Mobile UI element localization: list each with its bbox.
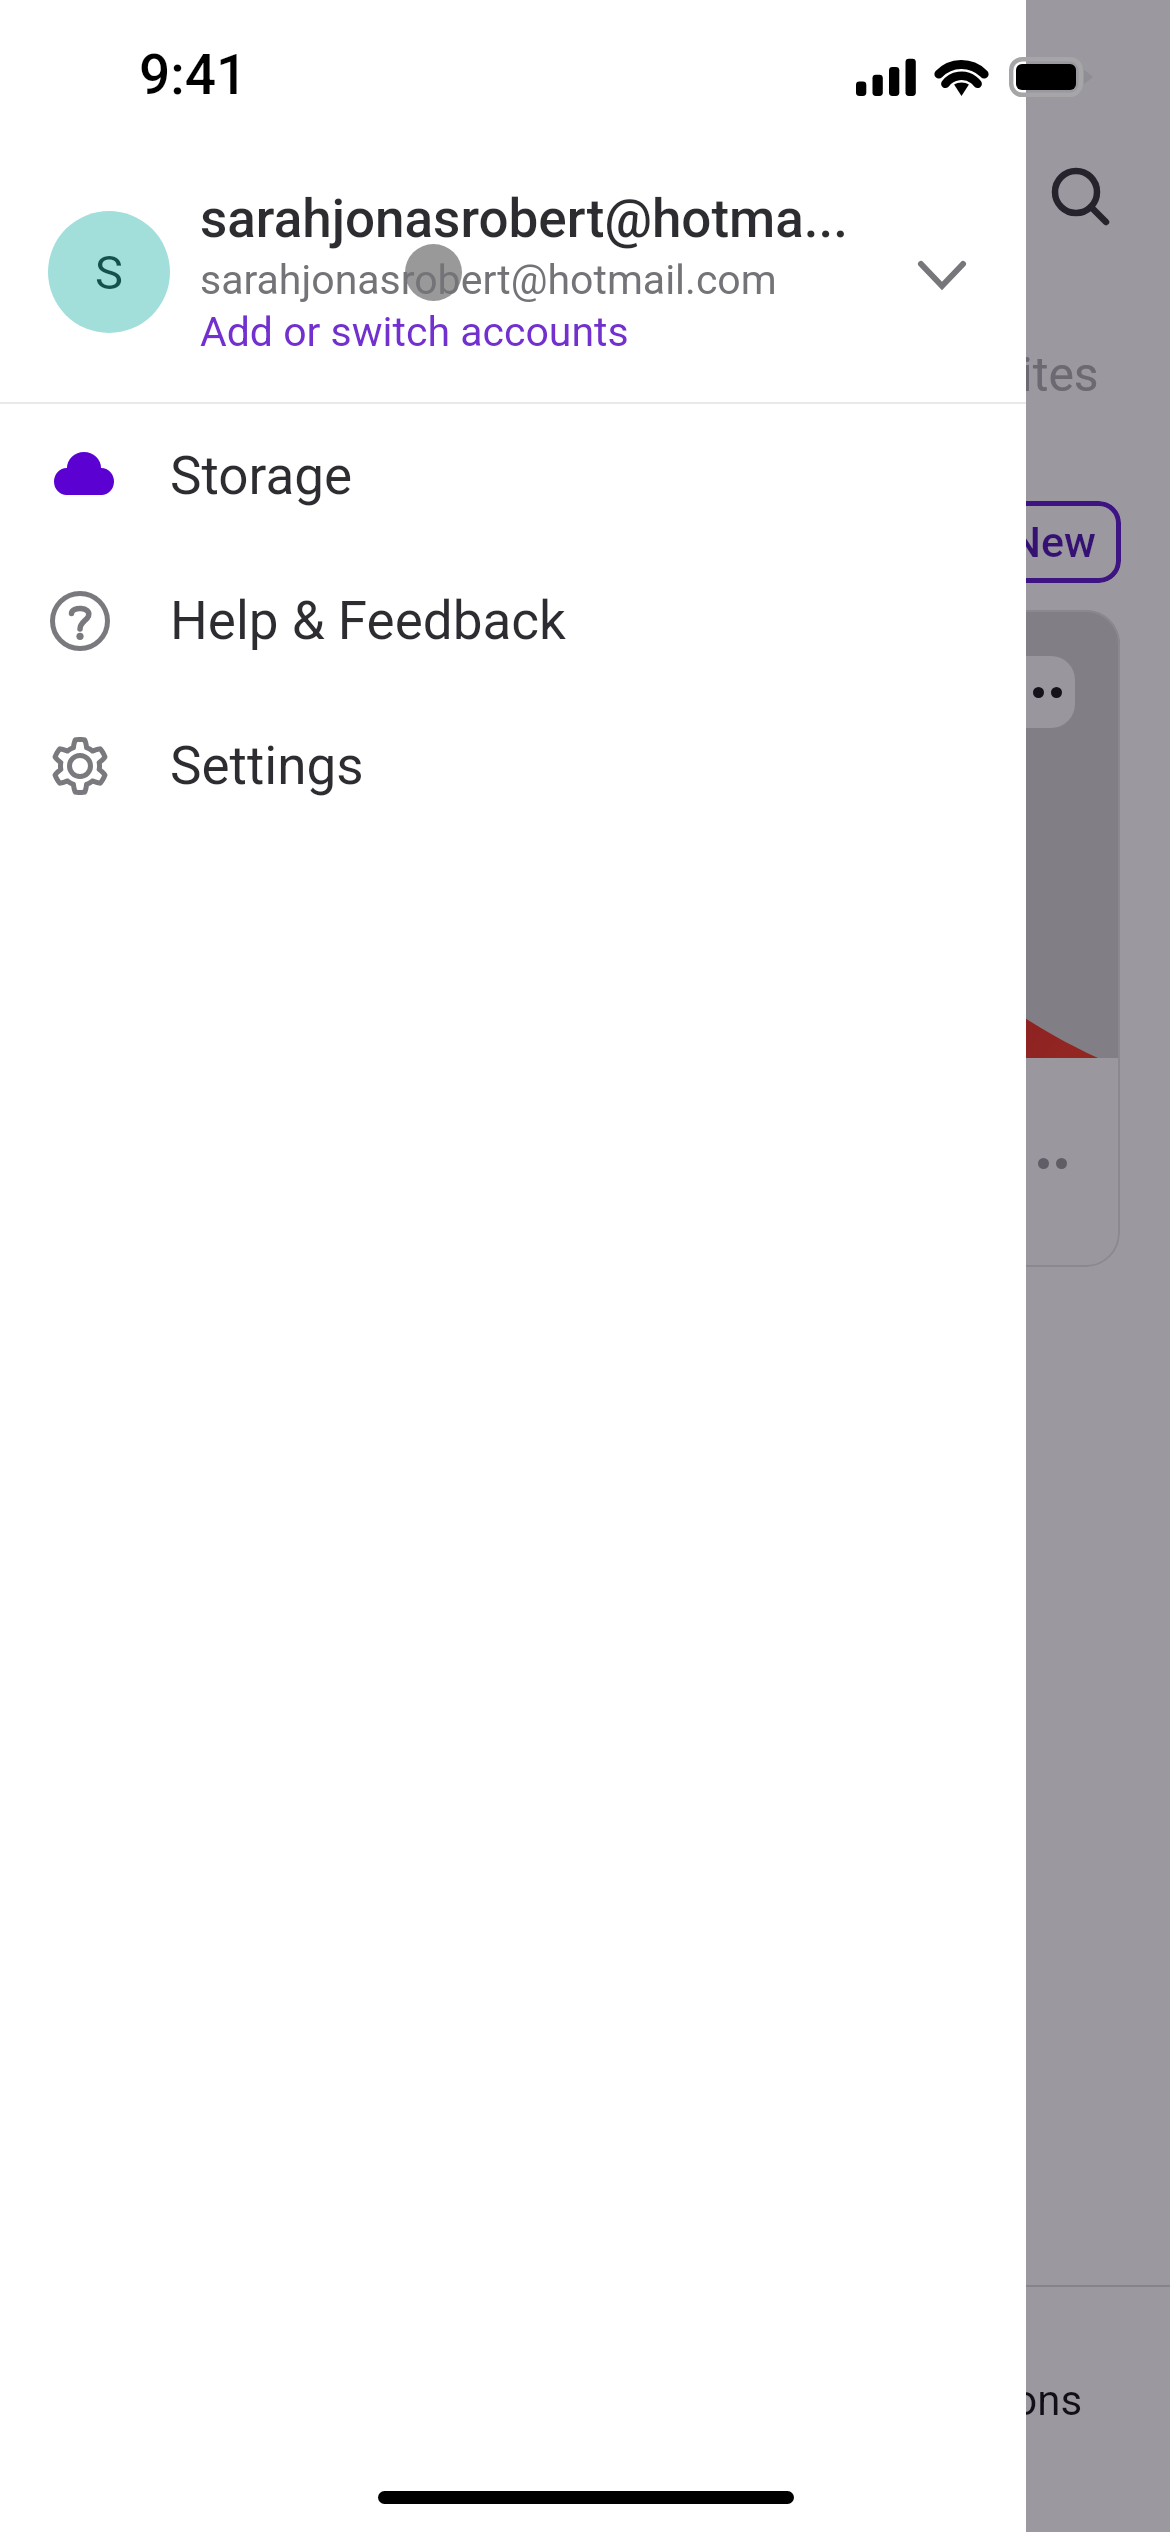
button[interactable]: Settings [0, 693, 1026, 838]
button[interactable]: More options [930, 656, 1075, 728]
staticText: S [95, 245, 123, 300]
button[interactable]: Storage [0, 403, 1026, 548]
staticText: Help & Feedback [170, 590, 566, 652]
staticText: Add or switch accounts [200, 308, 900, 356]
button[interactable]: S [0, 150, 1026, 402]
staticText: sarahjonasrobert@hotmail.com [200, 256, 1000, 304]
button[interactable]: Search [1042, 160, 1122, 240]
staticText: 9:41 [139, 43, 248, 107]
button[interactable]: + New [770, 501, 1121, 583]
staticText: sarahjonasrobert@hotma... [200, 188, 920, 250]
staticText: Settings [170, 735, 364, 797]
button[interactable]: Help & Feedback [0, 548, 1026, 693]
staticText: Actions [940, 2376, 1083, 2425]
button[interactable]: Switch account [898, 231, 986, 319]
staticText: Favorites [903, 346, 1099, 402]
staticText: + New [976, 517, 1097, 567]
staticText: Storage [170, 445, 353, 507]
